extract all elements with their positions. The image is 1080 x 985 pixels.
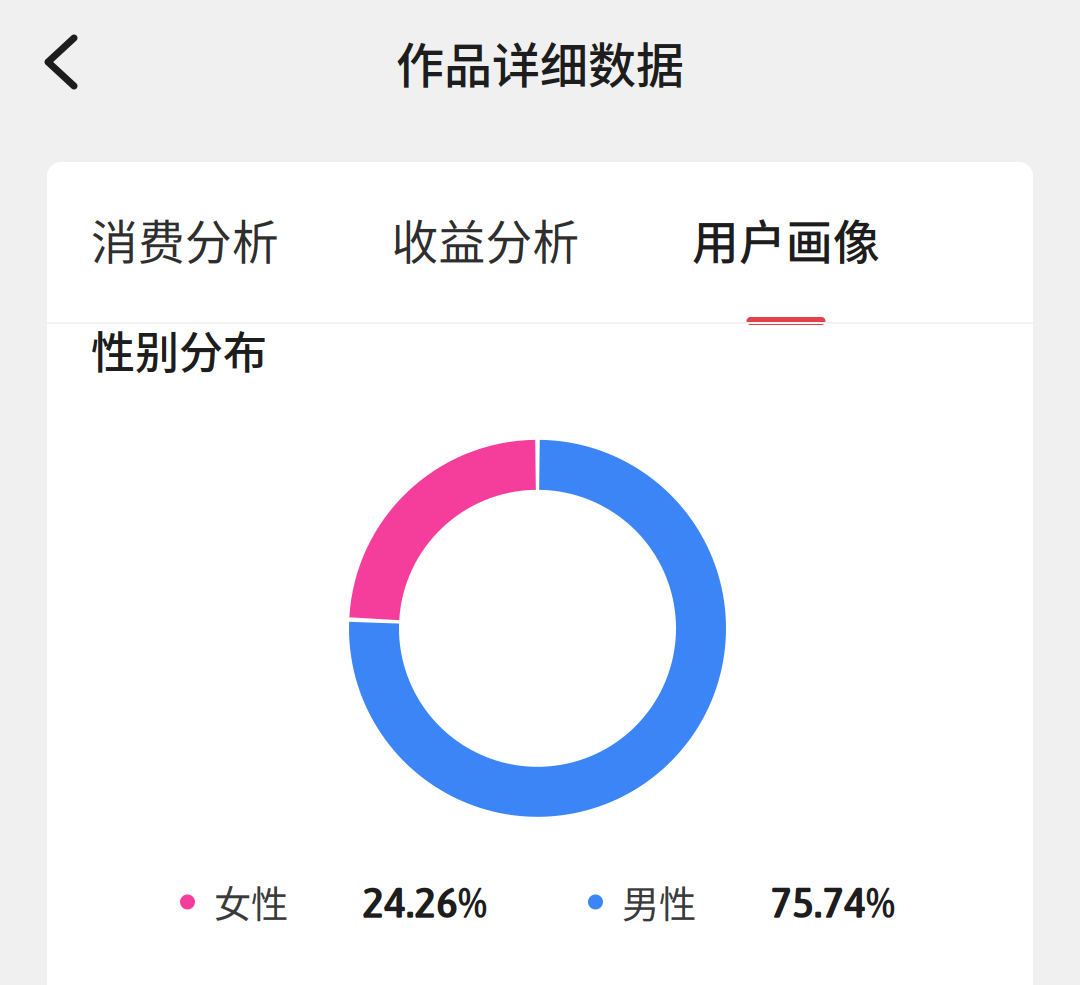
staticText: 消费分析: [91, 205, 279, 273]
staticText: 作品详细数据: [396, 27, 684, 97]
staticText: 收益分析: [391, 205, 579, 273]
button[interactable]: 用户画像: [686, 205, 886, 322]
button[interactable]: Back: [0, 10, 104, 114]
staticText: 性别分布: [91, 318, 267, 382]
staticText: 用户画像: [692, 205, 880, 273]
staticText: 75.74%: [770, 877, 895, 927]
button[interactable]: 收益分析: [385, 205, 585, 322]
button[interactable]: 消费分析: [85, 205, 285, 322]
staticText: 男性: [622, 875, 696, 929]
staticText: 24.26%: [362, 877, 487, 927]
staticText: 女性: [214, 875, 288, 929]
